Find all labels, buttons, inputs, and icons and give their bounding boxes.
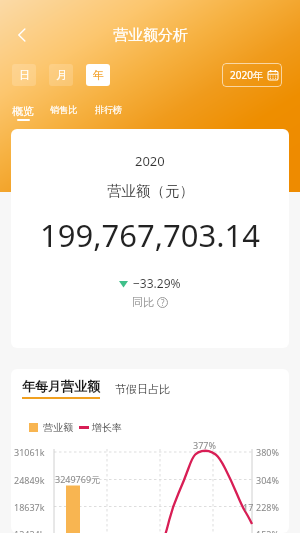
staticText: 营业额 bbox=[43, 421, 73, 434]
button[interactable]: 节假日占比 bbox=[115, 382, 170, 399]
staticText: ? bbox=[161, 297, 165, 308]
staticText: 营业额（元） bbox=[107, 182, 194, 200]
staticText: −33.29% bbox=[133, 275, 181, 291]
staticText: 380% bbox=[256, 446, 279, 458]
staticText: 营业额分析 bbox=[113, 26, 188, 45]
staticText: 12424k bbox=[14, 528, 45, 533]
staticText: 152% bbox=[256, 528, 279, 533]
staticText: 31061k bbox=[14, 446, 45, 458]
staticText: 17 bbox=[243, 501, 254, 513]
staticText: 2020 bbox=[135, 152, 165, 170]
staticText: 199,767,703.14 bbox=[40, 214, 260, 256]
staticText: 同比 bbox=[132, 295, 154, 309]
staticText: 年每月营业额 bbox=[22, 378, 100, 394]
staticText: 月 bbox=[56, 68, 67, 82]
staticText: 228% bbox=[256, 501, 279, 513]
staticText: 年 bbox=[93, 68, 104, 82]
button[interactable]: 2020年 bbox=[222, 63, 282, 87]
button[interactable]: 排行榜 bbox=[95, 104, 122, 116]
button[interactable]: 销售比 bbox=[50, 104, 77, 116]
button[interactable]: 年 bbox=[86, 64, 110, 86]
staticText: 销售比 bbox=[50, 104, 77, 115]
staticText: 2020年 bbox=[230, 68, 263, 82]
staticText: 日 bbox=[19, 68, 30, 82]
staticText: 24849k bbox=[14, 474, 45, 486]
staticText: 377% bbox=[193, 439, 216, 451]
staticText: 排行榜 bbox=[95, 104, 122, 115]
button[interactable]: 概览 bbox=[12, 104, 34, 121]
button[interactable]: Back bbox=[8, 21, 36, 49]
staticText: 概览 bbox=[12, 104, 34, 118]
button[interactable]: 年每月营业额 bbox=[22, 378, 100, 399]
staticText: 增长率 bbox=[92, 421, 122, 434]
staticText: 304% bbox=[256, 474, 279, 486]
staticText: 18637k bbox=[14, 501, 45, 513]
button[interactable]: 月 bbox=[49, 64, 73, 86]
staticText: 3249769元 bbox=[55, 473, 101, 485]
button[interactable]: 日 bbox=[12, 64, 36, 86]
staticText: 节假日占比 bbox=[115, 382, 170, 396]
